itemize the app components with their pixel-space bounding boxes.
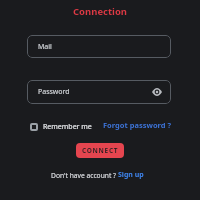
button[interactable]: Mail	[27, 35, 171, 58]
staticText: Don't have account ?	[51, 171, 116, 180]
staticText: Password	[38, 87, 70, 97]
staticText: Remember me	[43, 122, 92, 131]
button[interactable]: CONNECT	[76, 143, 124, 158]
button[interactable]: Remember me	[30, 122, 92, 131]
staticText: CONNECT	[82, 146, 119, 155]
button[interactable]: Forgot password ?	[103, 120, 172, 130]
staticText: Connection	[73, 5, 128, 18]
button[interactable]: Password	[27, 80, 171, 104]
staticText: Forgot password ?	[103, 120, 172, 130]
staticText: Sign up	[118, 170, 144, 180]
staticText: Mail	[38, 42, 52, 52]
button[interactable]: Sign up	[118, 170, 144, 180]
